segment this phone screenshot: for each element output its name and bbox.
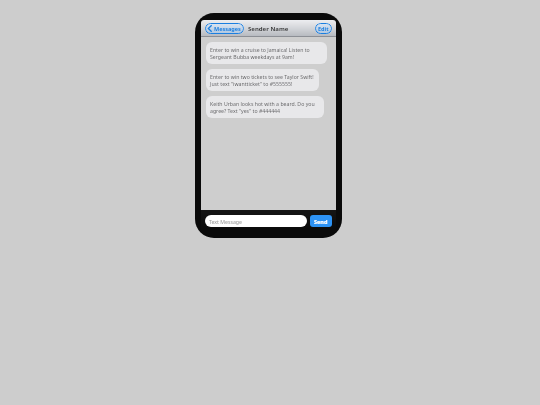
button[interactable]: Send — [310, 215, 332, 227]
staticText: Sender Name — [248, 25, 289, 33]
staticText: Enter to win two tickets to see Taylor S… — [210, 73, 315, 87]
button[interactable]: Edit — [315, 23, 332, 34]
staticText: Enter to win a cruise to Jamaica! Listen… — [210, 46, 323, 60]
button[interactable]: Back to Messages — [205, 23, 244, 34]
button[interactable]: Keith Urban looks hot with a beard. Do y… — [206, 96, 324, 118]
staticText: Edit — [318, 25, 329, 32]
staticText: Keith Urban looks hot with a beard. Do y… — [210, 100, 320, 114]
staticText: Send — [314, 218, 328, 225]
button[interactable]: Text Message — [205, 215, 307, 227]
staticText: Messages — [214, 25, 241, 32]
button[interactable]: Enter to win a cruise to Jamaica! Listen… — [206, 42, 327, 64]
button[interactable]: Enter to win two tickets to see Taylor S… — [206, 69, 319, 91]
staticText: Text Message — [209, 218, 242, 225]
